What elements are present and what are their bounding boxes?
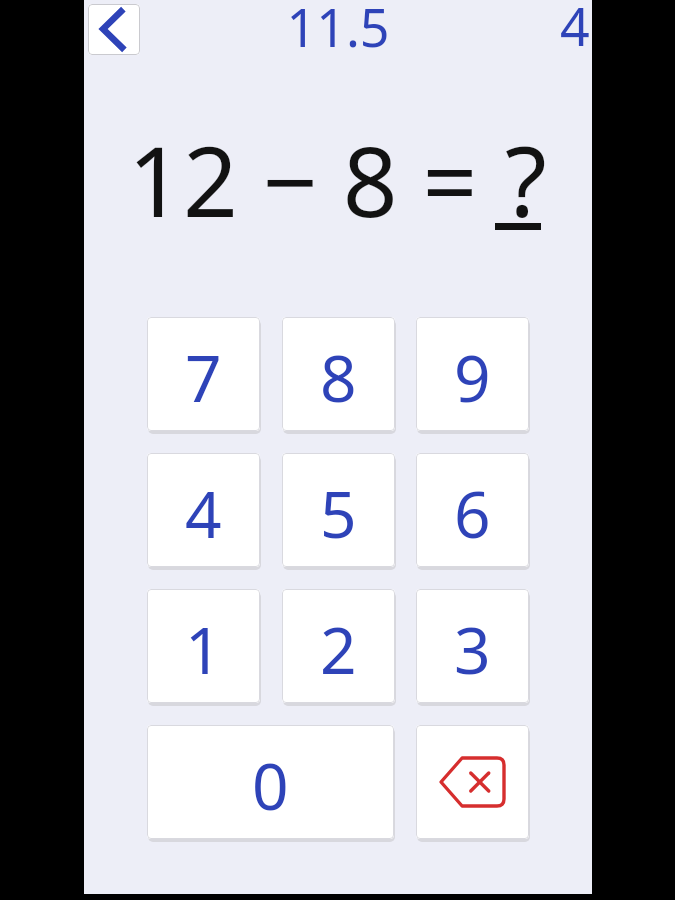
button[interactable]: 2 — [282, 589, 395, 703]
staticText: 1 — [185, 606, 222, 693]
button[interactable]: 4 — [147, 453, 260, 567]
button[interactable]: 9 — [416, 317, 529, 431]
staticText: ? — [505, 114, 547, 245]
staticText: 2 — [320, 606, 357, 693]
button[interactable]: 3 — [416, 589, 529, 703]
staticText: 4 — [185, 470, 222, 557]
staticText: 12 − 8 = — [128, 114, 503, 245]
button[interactable]: 8 — [282, 317, 395, 431]
button[interactable]: 7 — [147, 317, 260, 431]
button[interactable]: 6 — [416, 453, 529, 567]
staticText: 11.5 — [84, 0, 592, 62]
button[interactable] — [416, 725, 529, 839]
staticText: 7 — [185, 334, 222, 421]
staticText: 4 — [560, 0, 590, 61]
staticText: 3 — [454, 606, 491, 693]
staticText: 5 — [320, 470, 357, 557]
button[interactable]: 1 — [147, 589, 260, 703]
staticText: 0 — [252, 742, 289, 829]
button[interactable] — [88, 4, 140, 55]
button[interactable]: 0 — [147, 725, 394, 839]
button[interactable]: 5 — [282, 453, 395, 567]
staticText: 9 — [454, 334, 491, 421]
staticText: 8 — [320, 334, 357, 421]
staticText: 6 — [454, 470, 491, 557]
